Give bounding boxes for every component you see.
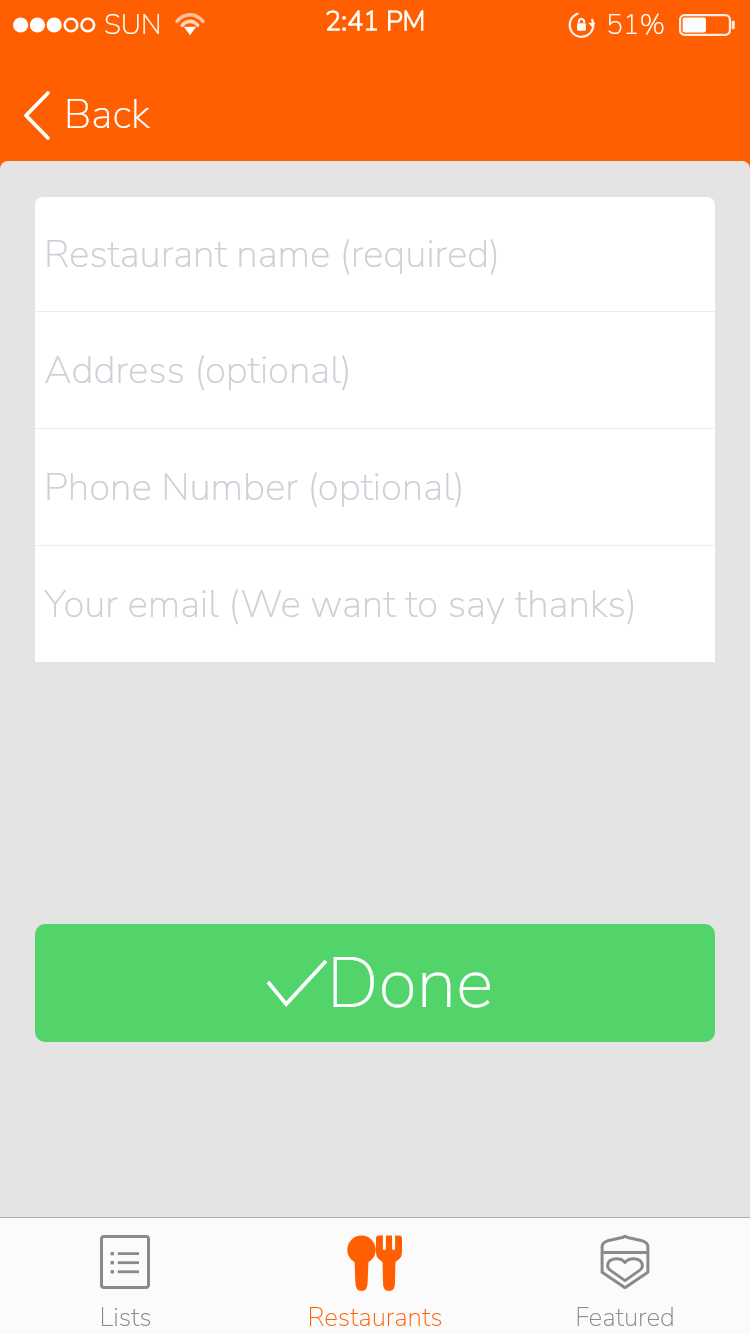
button[interactable]: Back xyxy=(16,77,159,153)
button[interactable]: Restaurants xyxy=(250,1218,500,1334)
button[interactable]: Address (optional) xyxy=(35,312,715,428)
staticText: Your email (We want to say thanks) xyxy=(44,578,637,631)
other: Restaurants xyxy=(347,1235,403,1289)
staticText: Restaurants xyxy=(307,1300,443,1334)
button[interactable]: Featured xyxy=(500,1218,750,1334)
staticText: 51% xyxy=(606,6,666,44)
staticText: Phone Number (optional) xyxy=(44,461,465,514)
button[interactable]: Phone Number (optional) xyxy=(35,429,715,545)
other: Featured xyxy=(600,1235,650,1289)
staticText: Featured xyxy=(575,1300,675,1334)
other: Lists xyxy=(100,1235,150,1289)
button[interactable]: Lists xyxy=(0,1218,250,1334)
staticText: SUN xyxy=(104,6,162,44)
button[interactable]: Done xyxy=(35,924,715,1042)
button[interactable]: Your email (We want to say thanks) xyxy=(35,546,715,662)
staticText: 2:41 PM xyxy=(325,3,426,40)
staticText: Back xyxy=(64,87,151,143)
button[interactable]: Restaurant name (required) xyxy=(35,197,715,311)
staticText: Address (optional) xyxy=(44,344,352,397)
staticText: Restaurant name (required) xyxy=(44,228,501,281)
staticText: Lists xyxy=(99,1300,152,1334)
staticText: Done xyxy=(327,935,494,1032)
